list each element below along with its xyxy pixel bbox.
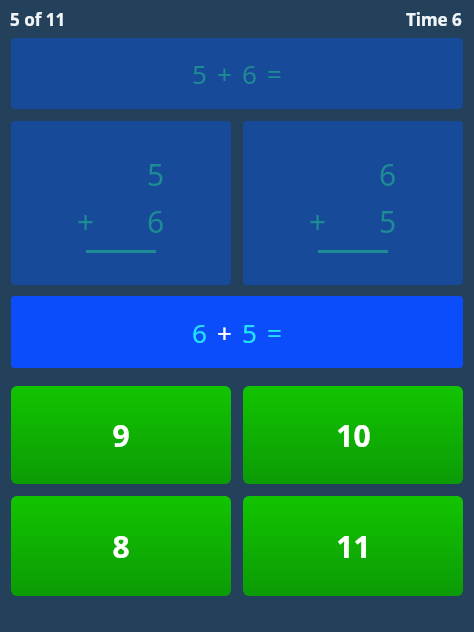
staticText: 5 (192, 56, 207, 91)
staticText: 5 (242, 315, 257, 350)
staticText: 6 (242, 56, 257, 91)
staticText: Time 6 (406, 8, 462, 31)
button[interactable]: 11 (243, 496, 463, 596)
staticText: 5 (147, 154, 165, 195)
staticText: = (267, 315, 282, 350)
staticText: 6 (379, 154, 397, 195)
button[interactable]: 6 (11, 296, 463, 368)
button[interactable]: 5 (11, 121, 231, 285)
staticText: 6 (147, 201, 165, 242)
staticText: 10 (336, 415, 371, 456)
staticText: = (267, 56, 282, 91)
staticText: 6 (192, 315, 207, 350)
staticText: 8 (112, 526, 130, 567)
staticText: + (77, 201, 95, 242)
staticText: 5 (379, 201, 397, 242)
staticText: + (217, 315, 232, 350)
button[interactable]: 6 (243, 121, 463, 285)
button[interactable]: 9 (11, 386, 231, 484)
staticText: + (309, 201, 327, 242)
staticText: 11 (336, 526, 371, 567)
button[interactable]: 8 (11, 496, 231, 596)
button[interactable]: 10 (243, 386, 463, 484)
staticText: + (217, 56, 232, 91)
staticText: 5 of 11 (10, 8, 66, 31)
button[interactable]: 5 (11, 38, 463, 109)
staticText: 9 (112, 415, 130, 456)
